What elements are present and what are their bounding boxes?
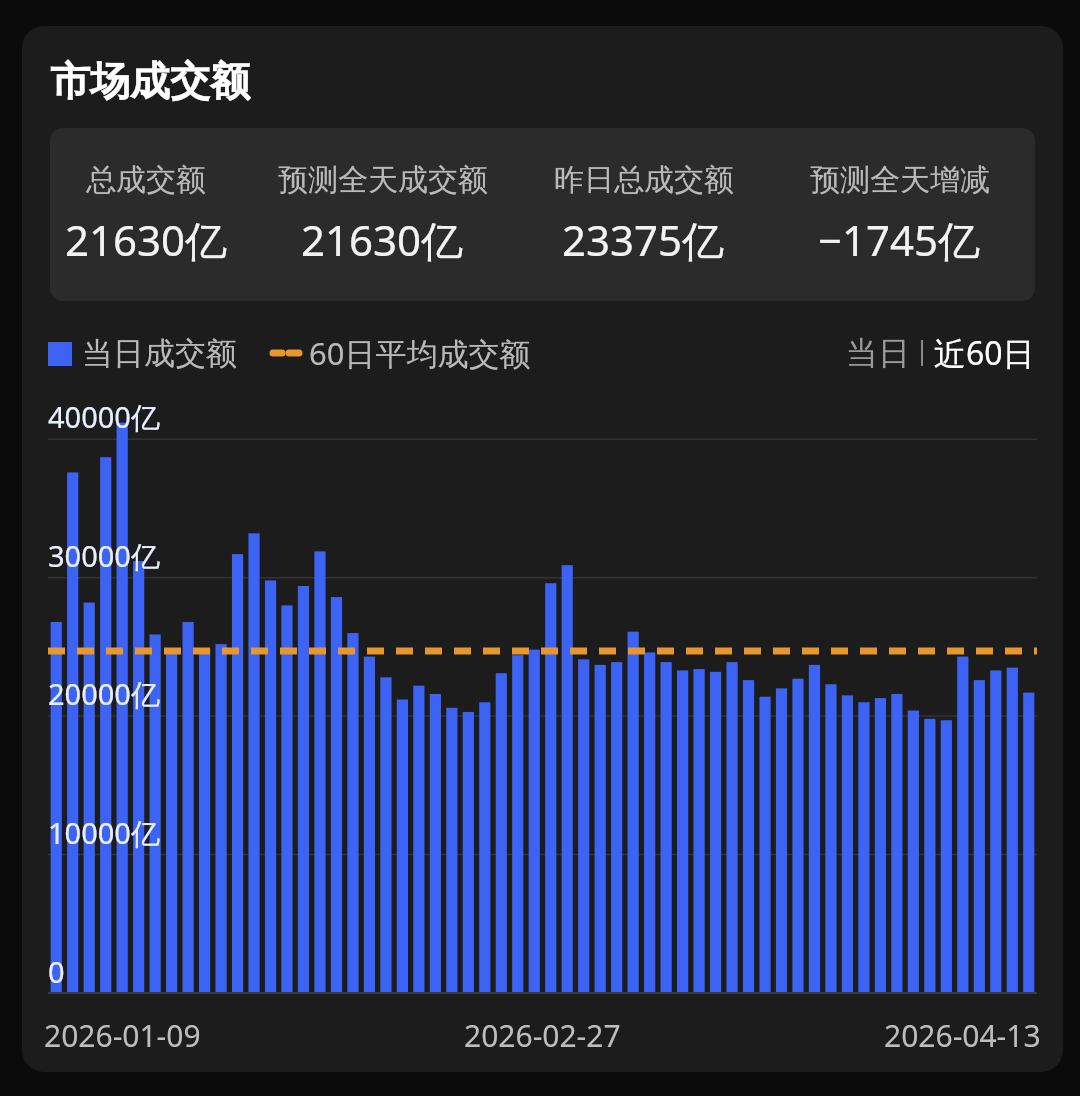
staticText: 总成交额 <box>86 161 206 199</box>
button[interactable]: 总成交额 <box>50 128 242 301</box>
staticText: 21630亿 <box>301 211 464 268</box>
staticText: 60日平均成交额 <box>309 332 531 374</box>
staticText: 21630亿 <box>65 211 228 268</box>
button[interactable]: 当日 <box>846 333 910 373</box>
button[interactable]: 市场成交额 <box>22 26 1063 1072</box>
staticText: 市场成交额 <box>50 56 250 106</box>
staticText: 当日成交额 <box>82 334 237 373</box>
button[interactable]: 预测全天增减 <box>764 128 1035 301</box>
button[interactable]: 当日成交额 <box>48 334 237 373</box>
staticText: −1745亿 <box>818 211 981 268</box>
staticText: 当日 <box>846 333 910 373</box>
staticText: 预测全天增减 <box>810 161 990 199</box>
button[interactable]: 昨日总成交额 <box>523 128 764 301</box>
button[interactable]: 市场成交额柱状图 <box>22 397 1063 1072</box>
button[interactable]: 总成交额 <box>50 128 1035 301</box>
button[interactable]: 近60日 <box>934 331 1035 375</box>
button[interactable]: 预测全天成交额 <box>242 128 523 301</box>
staticText: 昨日总成交额 <box>554 161 734 199</box>
staticText: 23375亿 <box>562 211 725 268</box>
staticText: 近60日 <box>934 331 1035 375</box>
staticText: 预测全天成交额 <box>278 161 488 199</box>
button[interactable]: 60日平均成交额 <box>273 332 531 374</box>
